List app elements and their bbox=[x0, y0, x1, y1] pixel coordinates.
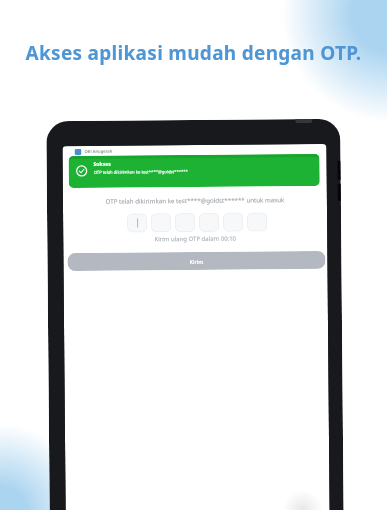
staticText: OK! Anugerah bbox=[84, 149, 113, 155]
staticText: Akses aplikasi mudah dengan OTP. bbox=[0, 40, 387, 66]
staticText: Kirim ulang OTP dalam 00:10 bbox=[63, 234, 327, 244]
button[interactable] bbox=[151, 213, 171, 232]
button[interactable]: Kirim bbox=[67, 251, 325, 271]
staticText: OTP telah dikirimkan ke test****@goldst*… bbox=[94, 169, 189, 176]
staticText: Sukses bbox=[94, 161, 112, 168]
staticText: OTP telah dikirimkan ke test****@goldst*… bbox=[63, 195, 327, 205]
button[interactable] bbox=[199, 213, 219, 232]
staticText: Kirim bbox=[189, 258, 203, 265]
button[interactable]: OK! Anugerah bbox=[74, 149, 113, 155]
button[interactable] bbox=[223, 213, 243, 232]
button[interactable] bbox=[127, 213, 147, 233]
button[interactable]: Sukses bbox=[68, 154, 320, 188]
button[interactable] bbox=[247, 212, 267, 232]
button[interactable] bbox=[175, 213, 195, 232]
